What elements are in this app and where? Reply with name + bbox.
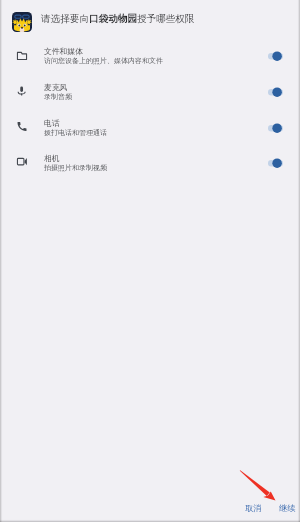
staticText: 取消 xyxy=(245,503,262,513)
staticText: 麦克风 xyxy=(44,82,68,92)
button[interactable]: 麦克风 xyxy=(0,76,300,112)
button[interactable]: 相机 xyxy=(0,147,300,183)
staticText: 继续 xyxy=(279,503,296,513)
button[interactable]: Toggle permission xyxy=(268,157,283,168)
button[interactable]: 继续 xyxy=(273,500,300,516)
button[interactable]: Toggle permission xyxy=(268,86,283,97)
staticText: 请选择要向口袋动物园授予哪些权限 xyxy=(41,13,195,25)
staticText: 访问您设备上的照片、媒体内容和文件 xyxy=(44,56,163,65)
staticText: 电话 xyxy=(44,118,60,128)
button[interactable]: Toggle permission xyxy=(268,122,283,133)
other: 口袋动物园 app icon xyxy=(12,12,32,32)
staticText: 文件和媒体 xyxy=(44,46,83,56)
button[interactable]: Toggle permission xyxy=(268,50,283,61)
staticText: 拨打电话和管理通话 xyxy=(44,128,107,137)
staticText: 拍摄照片和录制视频 xyxy=(44,163,107,172)
button[interactable]: 文件和媒体 xyxy=(0,40,300,76)
staticText: 录制音频 xyxy=(44,92,72,101)
button[interactable]: 电话 xyxy=(0,112,300,148)
button[interactable]: 取消 xyxy=(239,500,268,516)
staticText: 相机 xyxy=(44,153,60,163)
